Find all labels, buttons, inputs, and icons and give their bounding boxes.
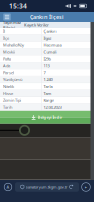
staticText: Mevkii (3, 49, 15, 55)
button[interactable]: Hisse (0, 90, 94, 97)
staticText: 7 (43, 70, 45, 75)
button[interactable]: İl (0, 28, 94, 35)
staticText: Nitelik (3, 84, 14, 89)
staticText: Pafta (3, 56, 11, 61)
staticText: İ29b (43, 56, 50, 61)
button[interactable]: Yüzölçümü (0, 76, 94, 83)
staticText: A (6, 184, 9, 190)
staticText: Yüzölçümü (3, 77, 22, 82)
staticText: Ada (3, 63, 10, 68)
staticText: Parsel (3, 70, 14, 75)
staticText: Zemin Tipi (3, 98, 21, 103)
button[interactable]: Mahalle/Köy (0, 42, 94, 49)
button[interactable]: Nitelik (0, 83, 94, 90)
staticText: Taşınmaz Bilgisi (3, 20, 21, 30)
button[interactable]: Ada (0, 62, 94, 69)
staticText: Hacımusa (43, 42, 61, 48)
staticText: Tarih (3, 104, 12, 110)
staticText: Çankırı (43, 29, 56, 34)
staticText: Mahalle/Köy (3, 42, 24, 48)
staticText: İl (3, 29, 5, 34)
button[interactable]: Menu (1, 12, 12, 22)
button[interactable]: Page settings (1, 180, 15, 194)
button[interactable]: sanatoryum.tkgm.gov.tr (15, 182, 79, 192)
staticText: Kargir (43, 98, 54, 103)
staticText: İlçe (3, 35, 9, 41)
button[interactable]: Pafta (0, 56, 94, 62)
staticText: Ilgaz (43, 35, 51, 41)
button[interactable]: Tarih (0, 104, 94, 111)
staticText: Tarla (43, 84, 52, 89)
button[interactable]: İlçe (0, 35, 94, 42)
staticText: 15:34 (9, 2, 27, 10)
staticText: 113 (43, 63, 49, 68)
staticText: Hisse (3, 91, 13, 96)
button[interactable]: Mevkii (0, 49, 94, 56)
staticText: ▸ (85, 185, 87, 189)
staticText: Kayıtlı Veriler (24, 22, 49, 28)
staticText: Cumali (43, 49, 56, 55)
button[interactable]: Belgeyi İndir (0, 111, 94, 124)
staticText: Belgeyi İndir (37, 115, 62, 120)
button[interactable]: Tabs (79, 180, 93, 194)
staticText: 12.04.2023 (43, 104, 61, 110)
staticText: sanatoryum.tkgm.gov.tr (26, 184, 68, 190)
staticText: 1.240 (43, 77, 52, 82)
staticText: Tam (43, 91, 51, 96)
staticText: Çankırı İlçesi (30, 13, 64, 21)
button[interactable]: Parsel (0, 69, 94, 76)
button[interactable]: Zemin Tipi (0, 97, 94, 104)
